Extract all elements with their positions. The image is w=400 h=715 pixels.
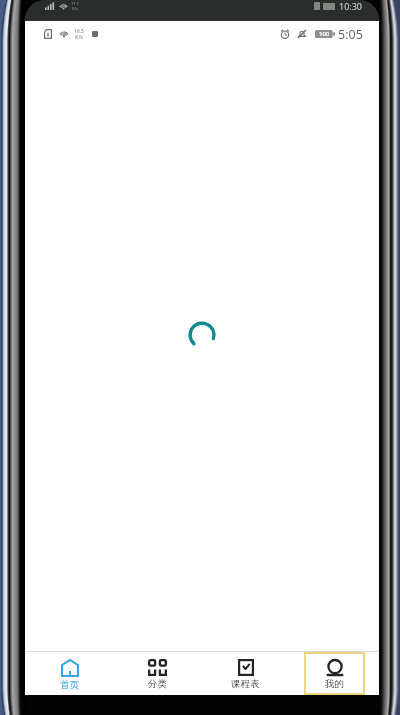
staticText: 5:05 xyxy=(338,26,363,43)
staticText: 100 xyxy=(319,30,330,38)
staticText: 我的 xyxy=(325,678,344,690)
button[interactable]: Home xyxy=(39,652,99,695)
button[interactable]: Schedule xyxy=(215,652,276,695)
staticText: 课程表 xyxy=(231,678,260,690)
staticText: 10:30 xyxy=(339,0,363,12)
staticText: 分类 xyxy=(148,678,167,690)
button[interactable]: Profile xyxy=(304,652,365,695)
button[interactable]: Categories xyxy=(127,652,187,695)
staticText: 首页 xyxy=(60,679,79,691)
staticText: 17.1 K/s xyxy=(71,1,79,11)
staticText: 16.5 K/s xyxy=(74,28,84,41)
